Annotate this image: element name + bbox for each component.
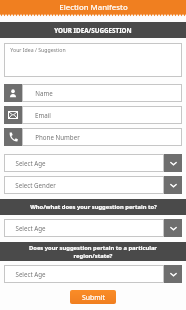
staticText: Select Gender <box>15 181 56 189</box>
button[interactable]: Phone <box>4 128 182 146</box>
button[interactable]: Select Age <box>4 154 182 172</box>
staticText: Does your suggestion pertain to a partic… <box>29 244 157 260</box>
other: Email <box>4 106 22 124</box>
staticText: Who/what does your suggestion pertain to… <box>30 203 157 211</box>
button[interactable]: Name <box>4 84 182 102</box>
staticText: Name <box>35 89 53 97</box>
staticText: YOUR IDEA/SUGGESTION <box>54 26 132 35</box>
button[interactable]: Your Idea / Suggestion <box>4 43 182 77</box>
button[interactable]: Select Age <box>4 265 182 283</box>
button[interactable]: Email <box>4 106 182 124</box>
button[interactable]: Submit <box>70 290 116 304</box>
button[interactable]: Select Age <box>4 219 182 237</box>
staticText: Your Idea / Suggestion <box>10 46 66 53</box>
other: Open dropdown <box>164 176 182 194</box>
staticText: Select Age <box>15 224 46 232</box>
staticText: Phone Number <box>35 133 80 141</box>
other: Phone <box>4 128 22 146</box>
staticText: Submit <box>82 293 105 302</box>
button[interactable]: Select Gender <box>4 176 182 194</box>
staticText: Email <box>35 111 51 119</box>
staticText: Election Manifesto <box>59 2 128 13</box>
staticText: Select Age <box>15 270 46 278</box>
other: Name <box>4 84 22 102</box>
other: Open dropdown <box>164 265 182 283</box>
staticText: Select Age <box>15 159 46 167</box>
other: Open dropdown <box>164 154 182 172</box>
other: Open dropdown <box>164 219 182 237</box>
